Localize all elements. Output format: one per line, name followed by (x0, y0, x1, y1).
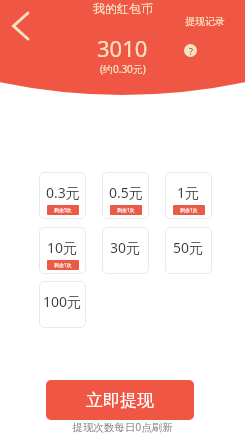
button[interactable]: 1元 (165, 172, 212, 219)
button[interactable]: Help (184, 44, 197, 57)
button[interactable]: 提现记录 (177, 12, 233, 31)
staticText: 1元 (177, 183, 200, 202)
staticText: 100元 (43, 292, 82, 311)
staticText: 剩余1次 (117, 207, 135, 214)
button[interactable]: 50元 (165, 227, 212, 274)
staticText: 0.5元 (109, 183, 143, 202)
button[interactable]: 100元 (39, 281, 86, 328)
staticText: 立即提现 (86, 390, 154, 411)
staticText: 剩余5次 (54, 207, 72, 214)
staticText: 剩余1次 (180, 207, 198, 214)
button[interactable]: 立即提现 (46, 380, 194, 420)
button[interactable]: 0.3元 (39, 172, 86, 219)
staticText: (约0.30元) (100, 62, 146, 76)
staticText: 提现记录 (185, 15, 225, 28)
button[interactable]: 30元 (102, 227, 149, 274)
button[interactable]: 10元 (39, 227, 86, 274)
staticText: ? (189, 45, 193, 57)
button[interactable]: Back (4, 10, 36, 42)
staticText: 0.3元 (46, 183, 80, 202)
staticText: 50元 (173, 238, 204, 257)
staticText: 30元 (110, 238, 141, 257)
staticText: 10元 (47, 238, 78, 257)
staticText: 剩余1次 (54, 262, 72, 269)
button[interactable]: 0.5元 (102, 172, 149, 219)
staticText: 提现次数每日0点刷新 (72, 420, 173, 434)
staticText: 3010 (97, 33, 148, 63)
staticText: 我的红包币 (93, 1, 153, 16)
